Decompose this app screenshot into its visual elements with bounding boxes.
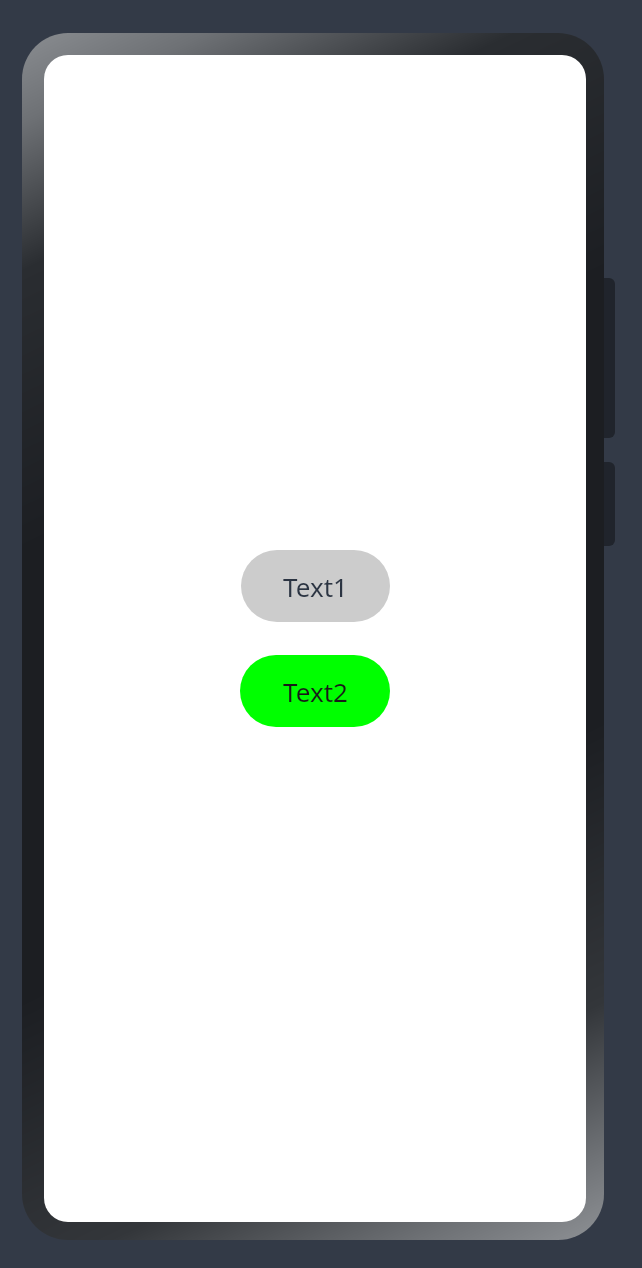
staticText: Text2	[283, 674, 348, 709]
button[interactable]: Text2	[240, 655, 390, 727]
staticText: Text1	[283, 569, 348, 604]
button[interactable]: Text1	[241, 550, 390, 622]
